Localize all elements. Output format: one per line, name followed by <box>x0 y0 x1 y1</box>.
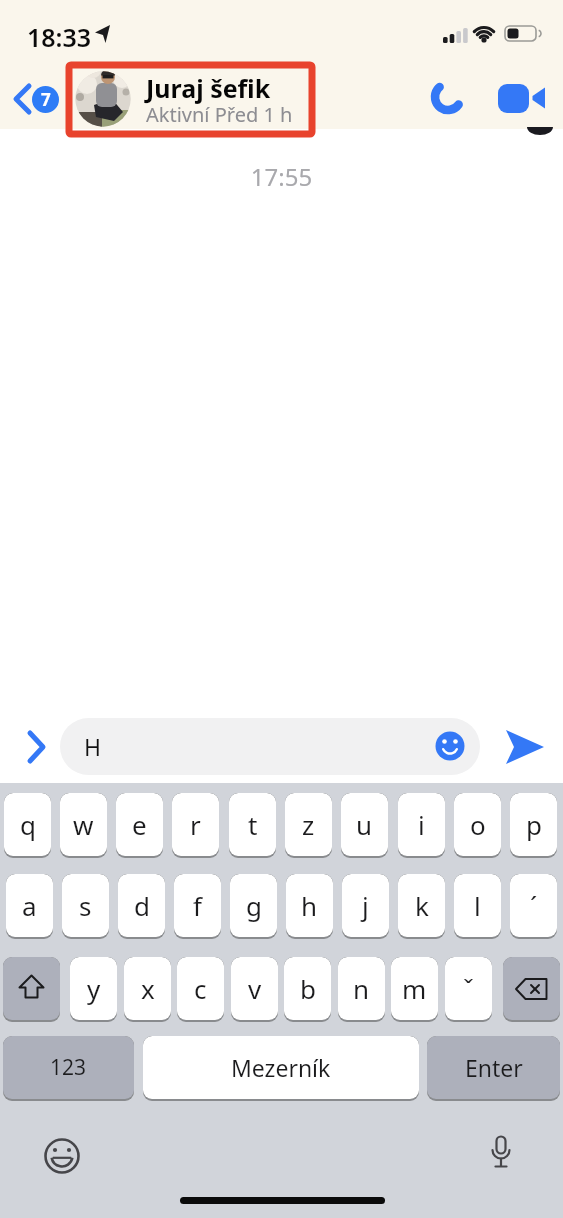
staticText: f <box>193 888 202 923</box>
button[interactable] <box>494 79 546 119</box>
staticText: g <box>246 888 262 923</box>
staticText: y <box>87 971 101 1006</box>
staticText: d <box>134 888 150 923</box>
button[interactable]: ´ <box>510 874 557 937</box>
button[interactable]: y <box>70 957 117 1020</box>
staticText: w <box>73 807 94 842</box>
button[interactable] <box>20 727 54 767</box>
button[interactable]: o <box>454 793 501 856</box>
staticText: Juraj šefik <box>146 71 271 105</box>
button[interactable]: q <box>4 793 51 856</box>
button[interactable]: b <box>284 957 331 1020</box>
staticText: u <box>356 807 373 842</box>
button[interactable]: s <box>62 874 109 937</box>
button[interactable]: Mezerník <box>143 1036 419 1099</box>
staticText: h <box>301 888 318 923</box>
button[interactable]: ˇ <box>445 957 492 1020</box>
button[interactable] <box>42 1136 82 1176</box>
staticText: v <box>248 971 262 1006</box>
staticText: z <box>302 807 315 842</box>
button[interactable]: i <box>398 793 445 856</box>
button[interactable]: w <box>60 793 107 856</box>
staticText: ˇ <box>463 971 474 1006</box>
button[interactable]: a <box>6 874 53 937</box>
staticText: 17:55 <box>0 160 563 193</box>
staticText: H <box>84 731 102 762</box>
staticText: p <box>526 807 542 842</box>
button[interactable] <box>481 1134 521 1174</box>
staticText: a <box>22 888 37 923</box>
staticText: m <box>402 971 427 1006</box>
staticText: j <box>362 888 369 923</box>
staticText: o <box>470 807 486 842</box>
button[interactable] <box>3 957 60 1020</box>
staticText: 18:33 <box>27 20 92 54</box>
button[interactable]: g <box>230 874 277 937</box>
button[interactable] <box>428 79 468 119</box>
button[interactable]: j <box>342 874 389 937</box>
staticText: ´ <box>530 888 538 923</box>
button[interactable] <box>503 957 560 1020</box>
button[interactable]: t <box>229 793 276 856</box>
button[interactable]: u <box>341 793 388 856</box>
staticText: e <box>132 807 147 842</box>
staticText: Mezerník <box>231 1052 331 1083</box>
button[interactable] <box>60 718 480 775</box>
staticText: r <box>190 807 201 842</box>
button[interactable]: f <box>174 874 221 937</box>
button[interactable]: v <box>231 957 278 1020</box>
button[interactable]: x <box>124 957 171 1020</box>
staticText: 7 <box>41 88 51 111</box>
button[interactable] <box>66 62 315 137</box>
button[interactable] <box>0 0 563 129</box>
staticText: c <box>194 971 207 1006</box>
button[interactable]: k <box>398 874 445 937</box>
staticText: x <box>141 971 155 1006</box>
staticText: s <box>79 888 92 923</box>
staticText: i <box>418 807 425 842</box>
button[interactable]: c <box>177 957 224 1020</box>
staticText: l <box>474 888 481 923</box>
button[interactable] <box>500 725 548 769</box>
staticText: b <box>300 971 316 1006</box>
button[interactable]: m <box>391 957 438 1020</box>
staticText: t <box>248 807 258 842</box>
staticText: 123 <box>50 1053 87 1082</box>
button[interactable]: Enter <box>427 1036 560 1099</box>
button[interactable]: e <box>116 793 163 856</box>
button[interactable]: 7 <box>32 86 59 113</box>
button[interactable]: p <box>510 793 557 856</box>
button[interactable]: z <box>285 793 332 856</box>
staticText: Enter <box>465 1052 523 1083</box>
button[interactable]: d <box>118 874 165 937</box>
staticText: Aktivní Před 1 h <box>146 101 293 128</box>
button[interactable]: l <box>454 874 501 937</box>
button[interactable]: h <box>286 874 333 937</box>
staticText: k <box>415 888 429 923</box>
staticText: q <box>20 807 36 842</box>
button[interactable] <box>8 80 38 118</box>
staticText: n <box>353 971 370 1006</box>
button[interactable]: n <box>338 957 385 1020</box>
button[interactable]: r <box>172 793 219 856</box>
button[interactable]: 123 <box>3 1036 134 1099</box>
